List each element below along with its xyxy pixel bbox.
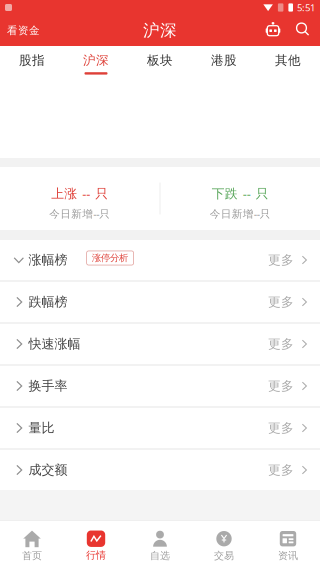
button[interactable]: 资讯	[256, 521, 320, 569]
button[interactable]: 搜索	[288, 15, 317, 46]
staticText: --	[243, 185, 251, 202]
staticText: 涨幅榜	[29, 252, 68, 268]
staticText: 今日新增--只	[210, 206, 271, 221]
staticText: 股指	[19, 52, 45, 68]
staticText: 更多	[268, 420, 294, 436]
staticText: 今日新增--只	[49, 206, 110, 221]
button[interactable]: 自选	[128, 521, 192, 569]
staticText: 更多	[268, 462, 294, 478]
button[interactable]: 换手率	[0, 366, 320, 406]
staticText: 更多	[268, 336, 294, 352]
staticText: 涨停分析	[92, 252, 128, 264]
staticText: 板块	[147, 52, 173, 68]
button[interactable]: 量比	[0, 408, 320, 448]
button[interactable]: 板块	[128, 46, 192, 76]
button[interactable]: 其他	[256, 46, 320, 76]
button[interactable]: 交易	[192, 521, 256, 569]
button[interactable]: 涨幅榜	[0, 240, 320, 280]
staticText: 更多	[268, 294, 294, 310]
staticText: 上涨	[51, 186, 77, 202]
button[interactable]: 跌幅榜	[0, 282, 320, 322]
staticText: 5:51	[297, 1, 315, 14]
staticText: 其他	[275, 52, 301, 68]
button[interactable]: 股指	[0, 46, 64, 76]
button[interactable]: 港股	[192, 46, 256, 76]
staticText: 沪深	[143, 20, 177, 41]
staticText: 更多	[268, 252, 294, 268]
button[interactable]: 智能助手	[258, 15, 288, 46]
button[interactable]: 看资金	[0, 15, 46, 46]
staticText: 快速涨幅	[29, 336, 81, 352]
button[interactable]: 快速涨幅	[0, 324, 320, 364]
staticText: 只	[256, 186, 269, 202]
staticText: 首页	[22, 549, 42, 562]
staticText: 下跌	[212, 186, 238, 202]
staticText: 自选	[150, 549, 170, 562]
staticText: 沪深	[83, 52, 109, 68]
staticText: 只	[95, 186, 108, 202]
staticText: --	[82, 185, 90, 202]
staticText: 更多	[268, 378, 294, 394]
staticText: 资讯	[278, 549, 298, 562]
staticText: 看资金	[7, 24, 40, 37]
button[interactable]: 沪深	[64, 46, 128, 76]
button[interactable]: 首页	[0, 521, 64, 569]
staticText: 交易	[214, 549, 234, 562]
staticText: 成交额	[29, 462, 68, 478]
staticText: 量比	[29, 420, 55, 436]
button[interactable]: 行情	[64, 521, 128, 569]
staticText: 跌幅榜	[29, 294, 68, 310]
button[interactable]: 成交额	[0, 450, 320, 490]
staticText: 换手率	[29, 378, 68, 394]
staticText: 港股	[211, 52, 237, 68]
staticText: 行情	[86, 549, 106, 561]
